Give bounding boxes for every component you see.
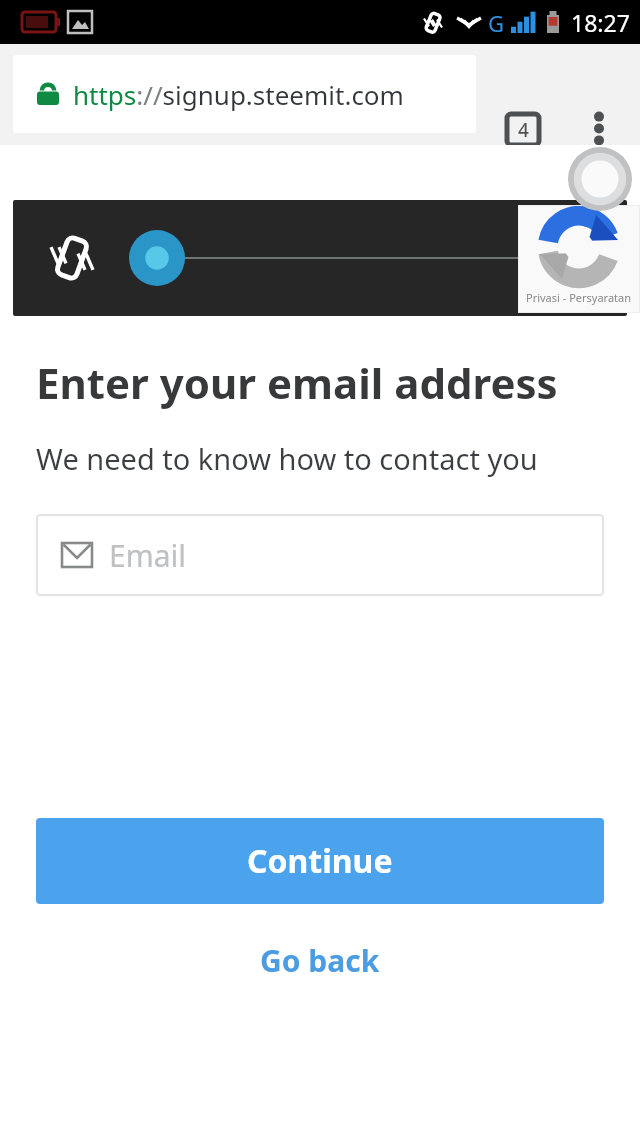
staticText: Go back (260, 940, 380, 981)
button[interactable]: Tabs (500, 114, 546, 145)
button[interactable]: Continue (36, 818, 604, 904)
staticText: We need to know how to contact you (36, 439, 538, 478)
button[interactable]: Email (36, 514, 604, 596)
staticText: https://signup.steemit.com (73, 77, 404, 112)
staticText: Enter your email address (36, 354, 558, 411)
button[interactable]: Go back (236, 932, 404, 989)
staticText: 4 (518, 117, 529, 143)
button[interactable]: Slider (129, 230, 185, 286)
staticText: Continue (247, 839, 393, 883)
staticText: G (488, 8, 505, 38)
button[interactable]: reCAPTCHA (518, 205, 640, 313)
staticText: Privasi - Persyaratan (526, 290, 632, 305)
staticText: 18:27 (571, 7, 630, 38)
staticText: Email (109, 535, 187, 576)
button[interactable]: https://signup.steemit.com (13, 55, 476, 133)
button[interactable]: More options (575, 112, 623, 145)
